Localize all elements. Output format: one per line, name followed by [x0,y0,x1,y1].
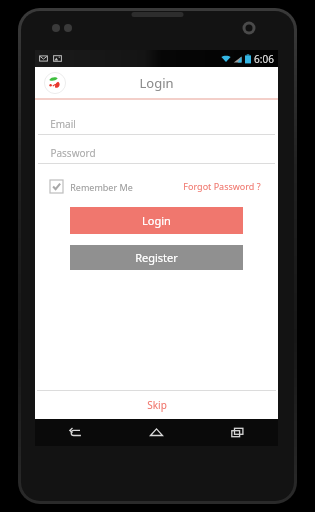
staticText: Register [135,250,178,265]
button[interactable]: Email [35,114,278,135]
staticText: Remember Me [70,181,133,193]
button[interactable]: Recent apps [197,419,278,446]
button[interactable]: App logo [44,72,66,94]
button[interactable]: Back [35,419,116,446]
staticText: 6:06 [254,52,274,66]
staticText: Login [142,213,171,228]
staticText: Password [50,146,96,160]
button[interactable]: Remember Me [50,180,133,193]
button[interactable]: Register [70,245,243,270]
button[interactable]: Login [70,207,243,234]
button[interactable]: Forgot Password ? [181,178,263,194]
button[interactable]: Skip [35,391,278,419]
staticText: Skip [147,398,167,412]
staticText: Login [139,74,174,92]
staticText: Forgot Password ? [183,180,261,192]
button[interactable]: Password [35,143,278,164]
staticText: Email [50,117,76,131]
button[interactable]: Home [116,419,197,446]
